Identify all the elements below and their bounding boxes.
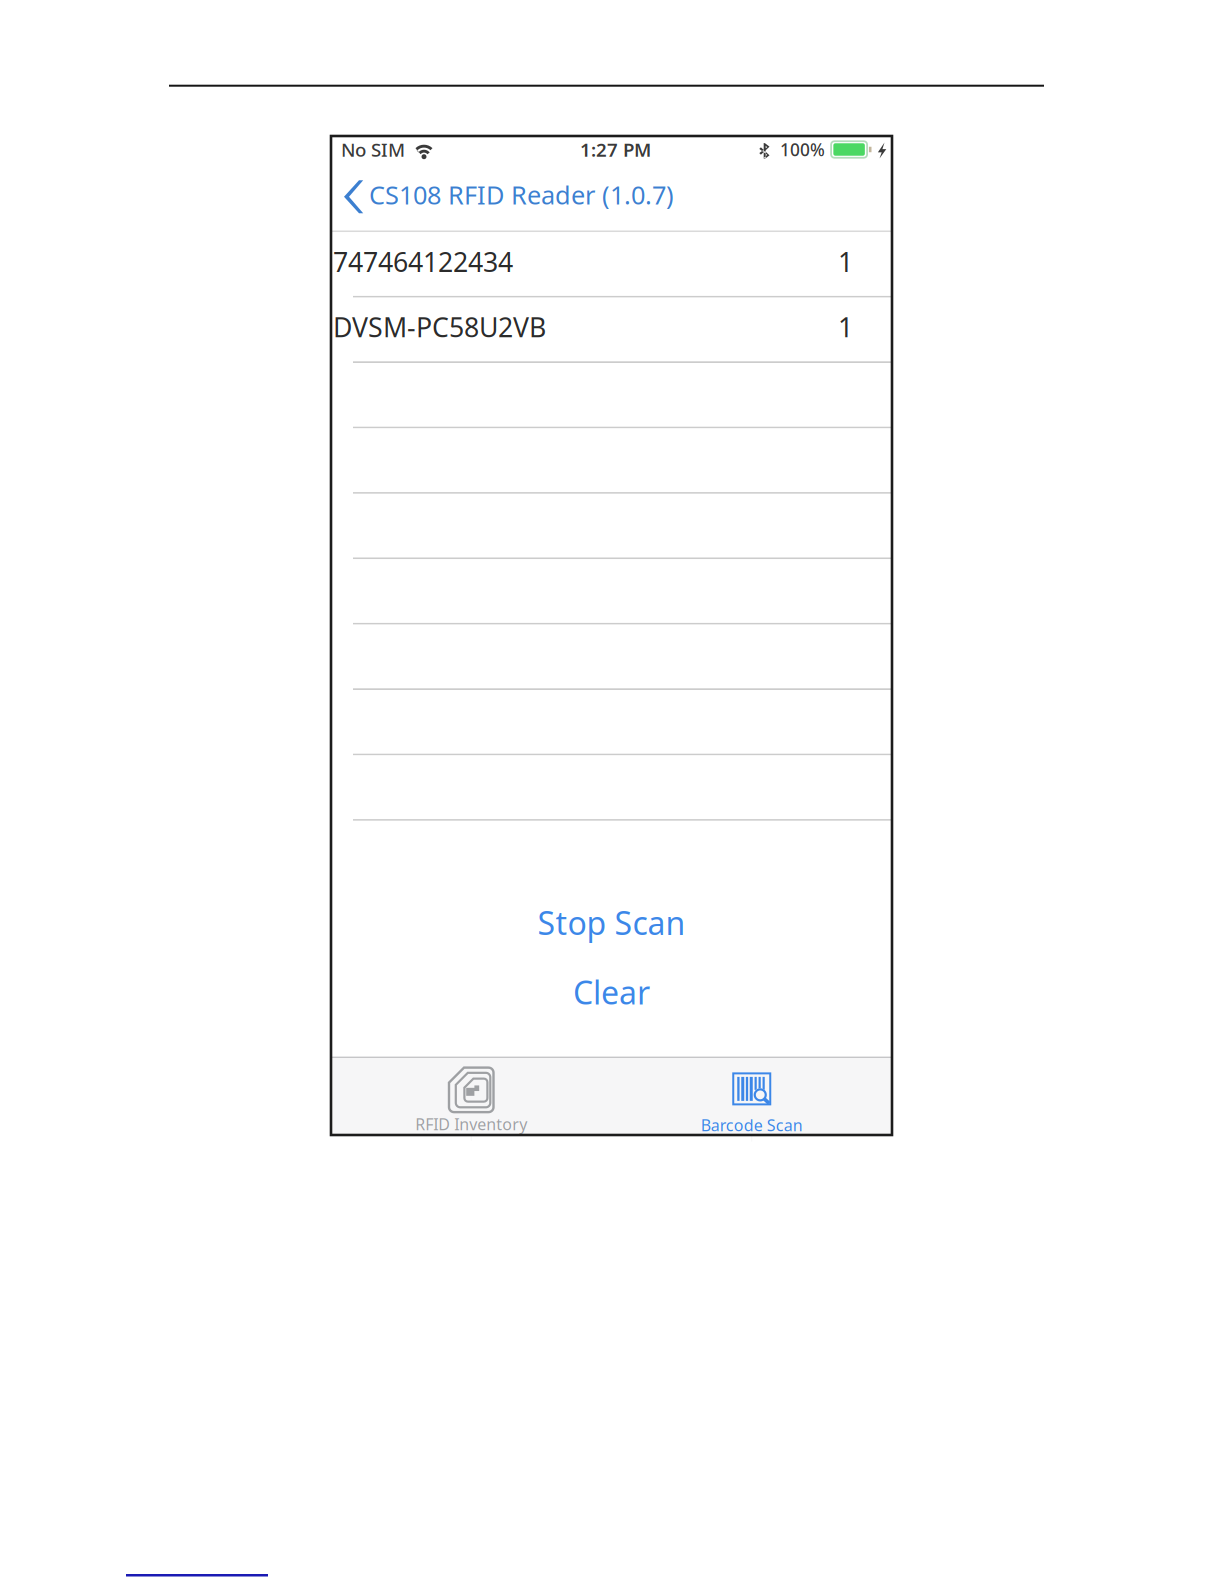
button[interactable]: CS108 RFID Reader (1.0.7) [331, 163, 684, 230]
button[interactable]: DVSM-PC58U2VB [331, 298, 892, 361]
staticText: CS108 RFID Reader (1.0.7) [369, 178, 674, 211]
staticText: No SIM [341, 137, 405, 162]
staticText: 1 [838, 309, 853, 345]
staticText: 100% [780, 138, 825, 161]
button[interactable]: Clear [331, 957, 892, 1027]
button[interactable]: Stop Scan [331, 888, 892, 957]
staticText: 1:27 PM [580, 137, 651, 162]
staticText: 747464122434 [333, 244, 513, 279]
button[interactable]: 747464122434 [331, 232, 892, 296]
staticText: DVSM-PC58U2VB [333, 309, 546, 345]
staticText: Clear [573, 971, 650, 1013]
button[interactable]: RFID Inventory [331, 1058, 611, 1135]
staticText: 1 [838, 244, 853, 279]
staticText: Stop Scan [537, 901, 685, 944]
staticText: Barcode Scan [701, 1114, 803, 1136]
staticText: RFID Inventory [415, 1113, 527, 1135]
button[interactable]: Barcode Scan [611, 1058, 892, 1135]
